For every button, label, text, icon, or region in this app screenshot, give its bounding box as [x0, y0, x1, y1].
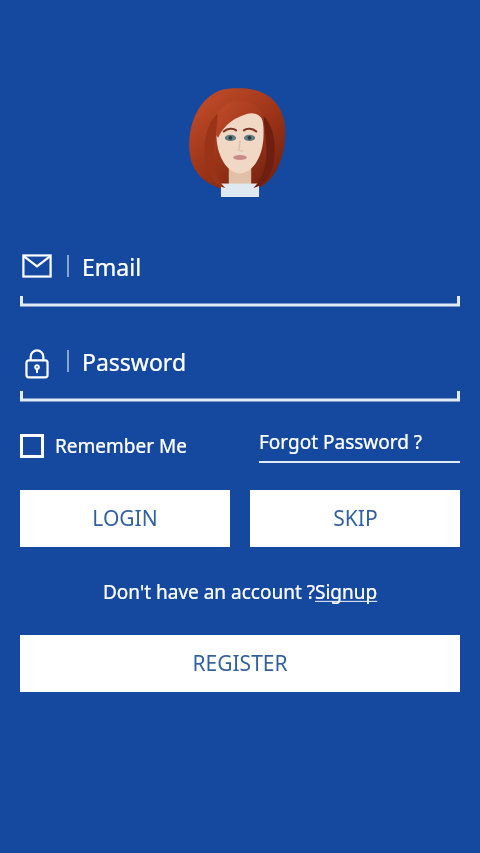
staticText: Email [82, 251, 142, 282]
button[interactable]: Email [20, 249, 460, 308]
staticText: REGISTER [192, 649, 288, 678]
other: Password [20, 344, 54, 378]
staticText: Don't have an account ? [103, 579, 315, 605]
button[interactable]: Forgot Password ? [259, 429, 460, 463]
other: Email [20, 249, 54, 283]
staticText: Forgot Password ? [259, 429, 423, 455]
button[interactable]: Remember Me [16, 429, 191, 463]
button[interactable]: LOGIN [20, 490, 230, 547]
staticText: Remember Me [55, 433, 187, 459]
button[interactable]: Password [20, 344, 460, 403]
button[interactable]: Signup [315, 579, 378, 605]
staticText: LOGIN [92, 504, 158, 533]
button[interactable]: REGISTER [20, 635, 460, 692]
staticText: SKIP [333, 504, 378, 533]
staticText: Password [82, 346, 187, 377]
button[interactable]: SKIP [250, 490, 460, 547]
staticText: Signup [315, 579, 378, 605]
